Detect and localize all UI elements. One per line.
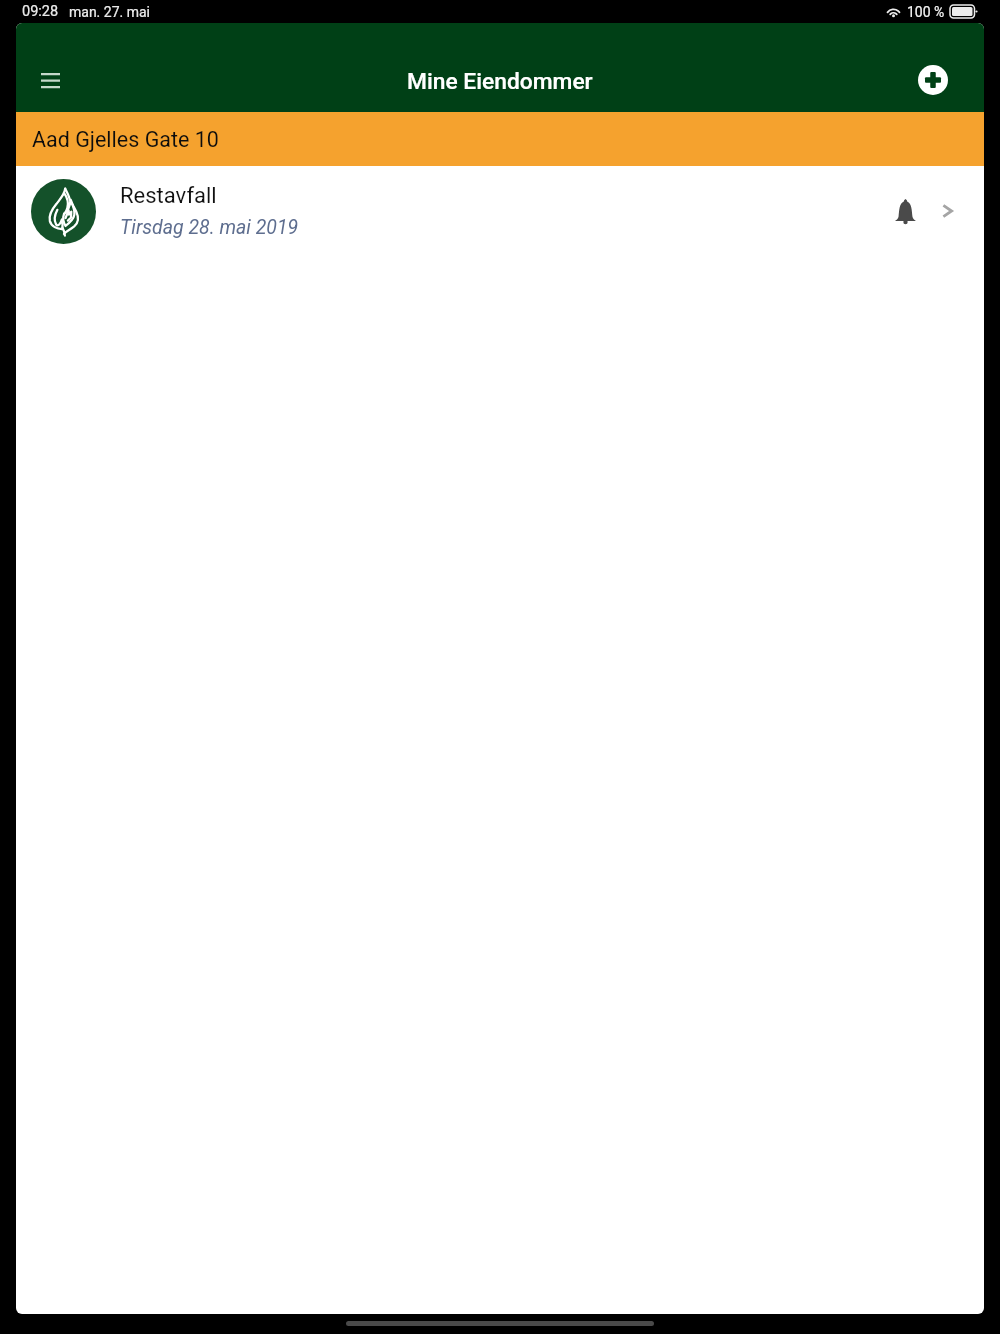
- button[interactable]: Aad Gjelles Gate 10: [16, 112, 984, 166]
- staticText: Aad Gjelles Gate 10: [32, 127, 219, 152]
- button[interactable]: Restavfall: [16, 166, 984, 256]
- button[interactable]: Open: [927, 191, 967, 231]
- staticText: 100 %: [907, 4, 945, 20]
- staticText: Restavfall: [120, 183, 217, 209]
- button[interactable]: Add property: [909, 56, 957, 104]
- staticText: man. 27. mai: [69, 4, 150, 20]
- staticText: Mine Eiendommer: [407, 68, 593, 95]
- staticText: 09:28: [22, 3, 59, 20]
- staticText: Tirsdag 28. mai 2019: [120, 216, 299, 239]
- button[interactable]: Menu: [26, 56, 74, 104]
- button[interactable]: Notifications: [883, 189, 927, 233]
